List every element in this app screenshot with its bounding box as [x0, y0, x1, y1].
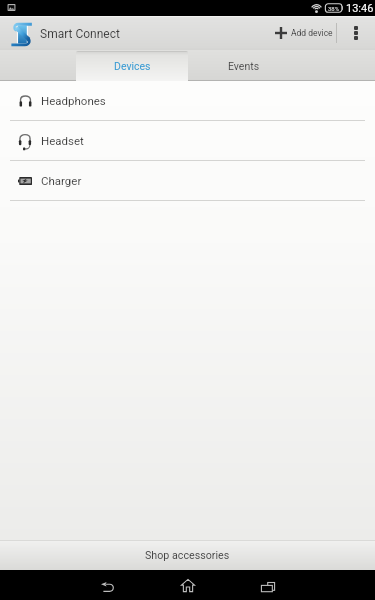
button[interactable]: Headset: [0, 121, 375, 161]
button[interactable]: Charger: [0, 161, 375, 201]
button[interactable]: Recent apps: [247, 570, 288, 600]
staticText: 13:46: [346, 2, 374, 15]
staticText: Add device: [291, 28, 333, 38]
button[interactable]: Home: [167, 570, 208, 600]
button[interactable]: More options: [337, 16, 375, 50]
staticText: Headphones: [41, 94, 106, 107]
staticText: Devices: [114, 60, 151, 72]
staticText: 38%: [328, 5, 340, 12]
button[interactable]: Shop accessories: [0, 540, 375, 570]
button[interactable]: [8, 20, 35, 47]
staticText: Shop accessories: [145, 549, 230, 562]
button[interactable]: Devices: [76, 51, 188, 81]
button[interactable]: Back: [87, 570, 128, 600]
button[interactable]: Add device: [269, 16, 339, 50]
staticText: Charger: [41, 174, 82, 187]
staticText: Events: [228, 60, 260, 72]
staticText: Smart Connect: [40, 27, 120, 41]
button[interactable]: Headphones: [0, 81, 375, 121]
staticText: Headset: [41, 134, 84, 147]
button[interactable]: Events: [188, 50, 300, 81]
